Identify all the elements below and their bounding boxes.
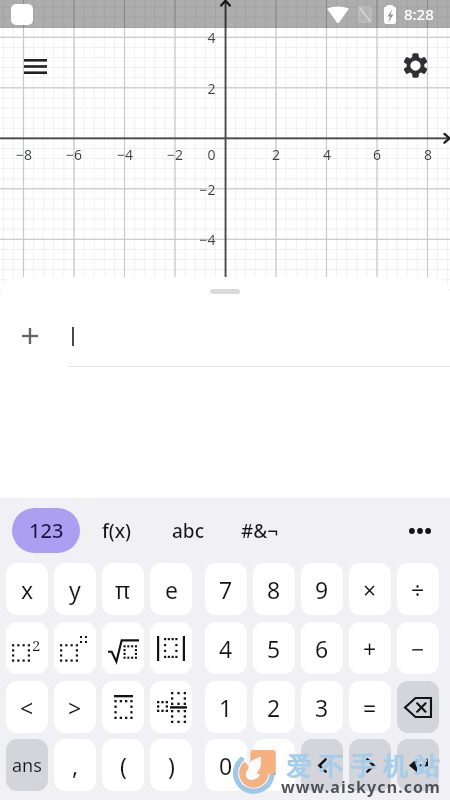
staticText: −6 [58, 145, 90, 164]
staticText: ) [168, 750, 175, 781]
button[interactable]: ans [6, 739, 48, 791]
staticText: 6 [315, 633, 329, 664]
staticText: ÷ [411, 574, 425, 605]
staticText: −2 [159, 145, 191, 164]
staticText: f(x) [102, 518, 131, 544]
button[interactable]: y [54, 563, 96, 615]
staticText: = [363, 692, 377, 723]
staticText: 8 [267, 574, 281, 605]
button[interactable]: Settings [391, 41, 439, 89]
button[interactable]: x [6, 563, 48, 615]
staticText: 2 [267, 692, 281, 723]
staticText: − [411, 633, 425, 664]
button[interactable]: move left [301, 739, 343, 791]
staticText: 2 [32, 635, 41, 655]
staticText: e [165, 574, 178, 605]
button[interactable]: Menu [11, 42, 59, 90]
staticText: 8:28 [404, 4, 434, 24]
staticText: , [72, 750, 79, 781]
staticText: 9 [315, 574, 329, 605]
button[interactable]: 1 [205, 681, 247, 733]
button[interactable]: 9 [301, 563, 343, 615]
staticText: 0 [219, 750, 233, 781]
button[interactable]: backspace [397, 681, 439, 733]
button[interactable]: = [349, 681, 391, 733]
button[interactable]: mixed number [150, 681, 192, 733]
staticText: ( [120, 750, 127, 781]
button[interactable]: ) [150, 739, 192, 791]
staticText: 3 [315, 692, 329, 723]
button[interactable]: 7 [205, 563, 247, 615]
staticText: 2 [260, 145, 292, 164]
staticText: 123 [29, 517, 64, 544]
staticText: −4 [109, 145, 141, 164]
button[interactable]: 3 [301, 681, 343, 733]
button[interactable]: 6 [301, 622, 343, 674]
staticText: > [68, 692, 82, 723]
button[interactable]: More options [400, 511, 440, 551]
staticText: #&¬ [241, 518, 279, 544]
staticText: 5 [267, 633, 281, 664]
staticText: −8 [8, 145, 40, 164]
staticText: x [21, 574, 34, 605]
button[interactable]: − [397, 622, 439, 674]
button[interactable]: 2 [253, 681, 295, 733]
staticText: 1 [219, 692, 233, 723]
button[interactable]: power [54, 622, 96, 674]
staticText: −4 [199, 230, 216, 249]
staticText: × [363, 574, 377, 605]
staticText: www.aiskycn.com [281, 776, 441, 798]
button[interactable]: Add expression [14, 320, 46, 352]
staticText: 7 [219, 574, 233, 605]
staticText: . [271, 750, 278, 781]
button[interactable]: 4 [205, 622, 247, 674]
staticText: 8 [412, 145, 444, 164]
staticText: π [115, 574, 131, 605]
button[interactable]: absolute value [150, 622, 192, 674]
button[interactable]: 123 [12, 508, 80, 553]
button[interactable]: square root [102, 622, 144, 674]
button[interactable]: #&¬ [225, 508, 295, 553]
staticText: 4 [207, 28, 216, 47]
button[interactable]: enter [397, 739, 439, 791]
staticText: abc [172, 518, 204, 544]
staticText: 爱不手机站 [283, 751, 443, 782]
staticText: y [69, 574, 81, 605]
button[interactable]: 0 [205, 739, 247, 791]
button[interactable]: move right [349, 739, 391, 791]
button[interactable]: . [253, 739, 295, 791]
button[interactable]: ( [102, 739, 144, 791]
staticText: 2 [207, 79, 216, 98]
staticText: ans [12, 753, 42, 778]
button[interactable]: 8 [253, 563, 295, 615]
button[interactable]: square [6, 622, 48, 674]
button[interactable]: , [54, 739, 96, 791]
button[interactable]: fraction [102, 681, 144, 733]
button[interactable]: × [349, 563, 391, 615]
button[interactable]: π [102, 563, 144, 615]
button[interactable]: e [150, 563, 192, 615]
button[interactable]: 5 [253, 622, 295, 674]
staticText: 6 [361, 145, 393, 164]
button[interactable]: f(x) [81, 508, 151, 553]
staticText: 4 [311, 145, 343, 164]
staticText: < [20, 692, 34, 723]
staticText: + [363, 633, 377, 664]
button[interactable]: + [349, 622, 391, 674]
staticText: 4 [219, 633, 233, 664]
button[interactable]: ÷ [397, 563, 439, 615]
button[interactable]: < [6, 681, 48, 733]
staticText: 0 [207, 145, 216, 164]
staticText: −2 [199, 180, 216, 199]
button[interactable]: > [54, 681, 96, 733]
button[interactable]: abc [153, 508, 223, 553]
